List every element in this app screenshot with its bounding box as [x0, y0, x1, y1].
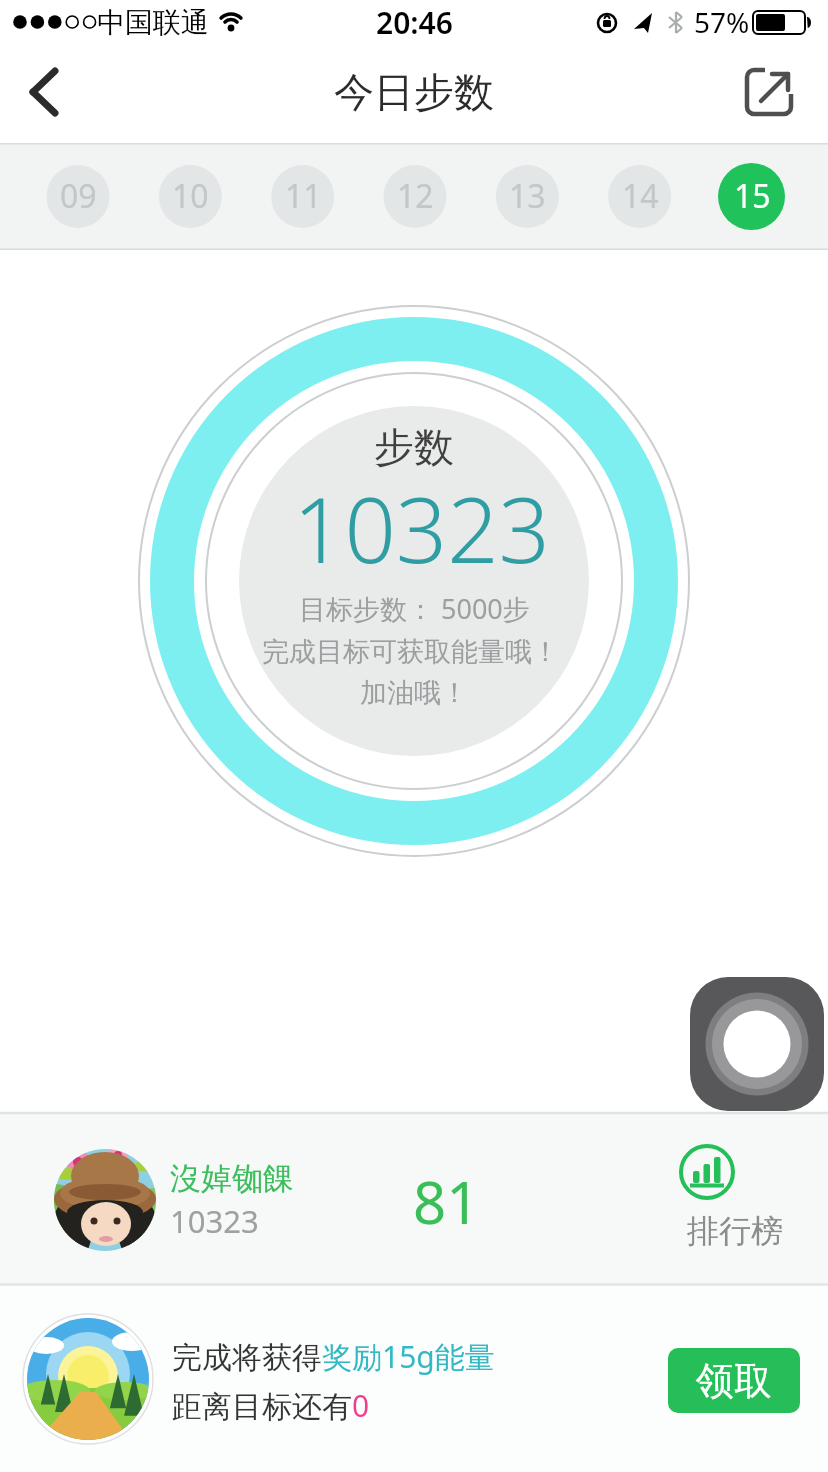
staticText: 15: [734, 174, 771, 218]
staticText: 步数: [374, 422, 454, 472]
staticText: 12: [397, 174, 434, 218]
button[interactable]: [45, 163, 111, 229]
staticText: 中国联通: [97, 5, 209, 40]
staticText: 81: [413, 1162, 480, 1241]
staticText: 完成将获得奖励15g能量: [172, 1336, 495, 1377]
staticText: 20:46: [376, 2, 453, 43]
staticText: 距离目标还有0: [172, 1385, 370, 1426]
button[interactable]: [157, 163, 223, 229]
button[interactable]: [660, 1135, 810, 1255]
button[interactable]: [738, 61, 800, 123]
button[interactable]: [382, 163, 448, 229]
staticText: 13: [509, 174, 546, 218]
button[interactable]: [16, 60, 80, 124]
button[interactable]: [0, 1114, 828, 1283]
staticText: 11: [285, 174, 322, 218]
staticText: 加油哦！: [360, 676, 468, 710]
button[interactable]: [607, 163, 673, 229]
button[interactable]: [719, 163, 785, 229]
button[interactable]: [270, 163, 336, 229]
staticText: 完成目标可获取能量哦！: [262, 635, 559, 669]
button[interactable]: [0, 1286, 650, 1472]
staticText: 10323: [293, 467, 550, 587]
staticText: 14: [622, 174, 659, 218]
button[interactable]: 领取: [668, 1348, 800, 1413]
staticText: 57%: [694, 3, 750, 41]
staticText: 沒婥铷餜: [170, 1159, 294, 1198]
button[interactable]: [494, 163, 560, 229]
button[interactable]: [690, 977, 824, 1111]
staticText: 10: [172, 174, 209, 218]
staticText: 领取: [696, 1357, 772, 1405]
staticText: 09: [60, 174, 97, 218]
staticText: 10323: [170, 1200, 259, 1242]
staticText: 今日步数: [334, 67, 494, 117]
staticText: 排行榜: [687, 1211, 783, 1251]
staticText: 目标步数： 5000步: [299, 590, 530, 627]
